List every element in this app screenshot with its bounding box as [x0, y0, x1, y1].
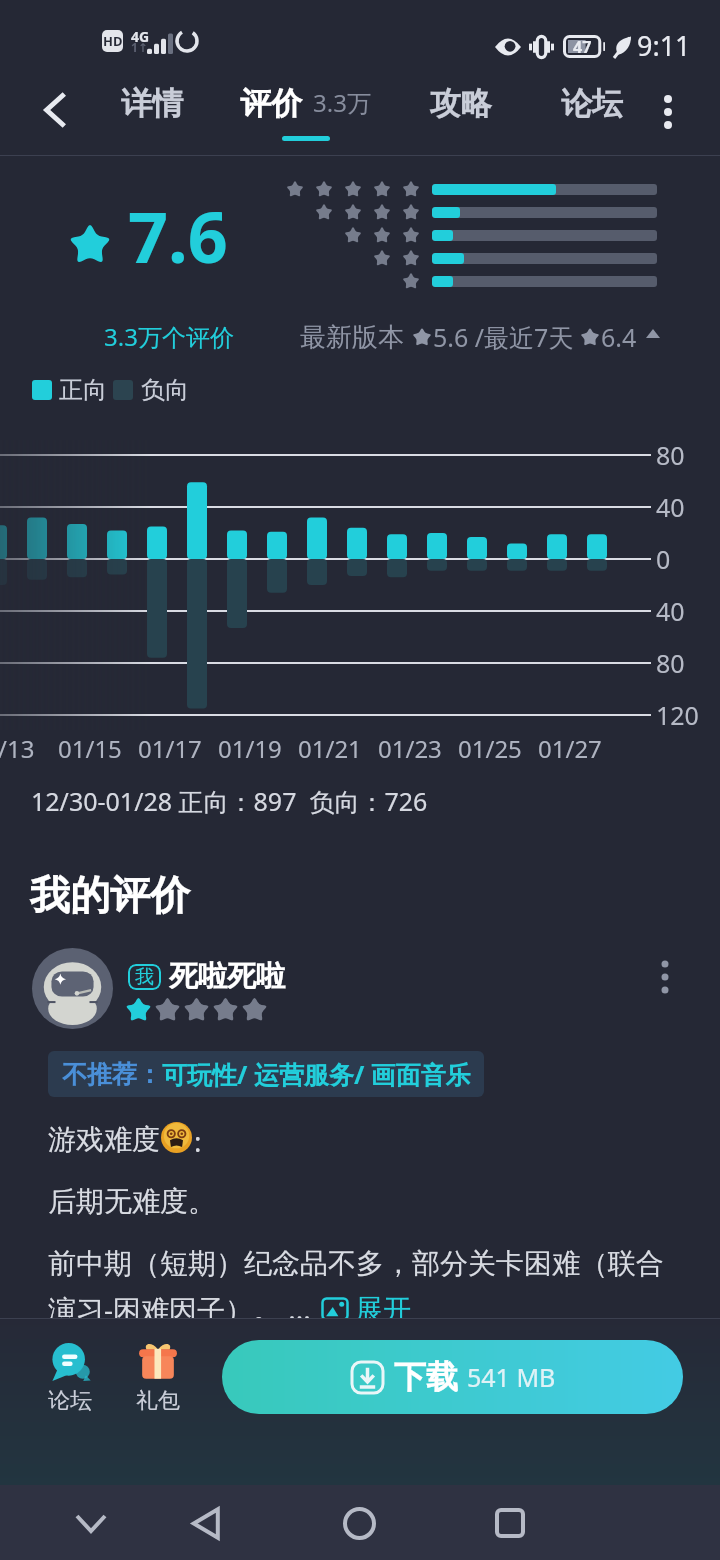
staticText: 礼包 [136, 1387, 180, 1415]
staticText: 01/19 [218, 732, 282, 765]
staticText: 论坛 [561, 84, 623, 123]
button[interactable]: 下载 [222, 1340, 683, 1414]
button[interactable]: 攻略 [430, 84, 492, 123]
button[interactable]: 论坛 [561, 84, 623, 123]
staticText: 5.6 /最近7天 [433, 320, 574, 354]
staticText: : [194, 1122, 202, 1160]
staticText: 01/21 [298, 732, 362, 765]
staticText: 可玩性/ 运营服务/ 画面音乐 [162, 1057, 471, 1091]
staticText: 4G [131, 27, 150, 46]
button[interactable]: Recents [478, 1491, 542, 1555]
staticText: 80 [656, 438, 685, 472]
staticText: 我 [135, 965, 154, 989]
staticText: 游戏难度 [48, 1122, 160, 1157]
staticText: 详情 [121, 84, 183, 123]
button[interactable]: Back [175, 1491, 239, 1555]
staticText: HD [103, 32, 123, 50]
staticText: 最新版本 [300, 321, 404, 354]
staticText: 01/17 [138, 732, 202, 765]
button[interactable]: 礼包 [123, 1340, 193, 1415]
button[interactable]: More options [640, 82, 696, 138]
staticText: 9:11 [637, 27, 691, 64]
staticText: 论坛 [48, 1387, 92, 1415]
staticText: 80 [656, 646, 685, 680]
staticText: 6.4 [601, 320, 637, 354]
staticText: 01/27 [538, 732, 602, 765]
staticText: 541 MB [467, 1360, 556, 1394]
staticText: 前中期（短期）纪念品不多，部分关卡困难（联合 [48, 1246, 664, 1281]
button[interactable]: 论坛 [35, 1340, 105, 1415]
staticText: 40 [656, 594, 685, 628]
staticText: 40 [656, 490, 685, 524]
staticText: 3.3万 [313, 86, 371, 119]
staticText: 3.3万个评价 [104, 320, 234, 353]
staticText: 0 [656, 542, 671, 576]
staticText: 评价 [240, 84, 302, 123]
staticText: 1↑ [131, 39, 148, 55]
button[interactable]: Hide keyboard [59, 1491, 123, 1555]
button[interactable]: Review options [640, 950, 690, 1000]
button[interactable]: 评价 [240, 84, 371, 141]
staticText: 下载 [394, 1357, 458, 1397]
staticText: 死啦死啦 [169, 958, 285, 995]
staticText: 正向 [59, 375, 107, 405]
staticText: 不推荐： [62, 1059, 162, 1090]
staticText: 攻略 [430, 84, 492, 123]
staticText: 负向 [141, 375, 189, 405]
staticText: 120 [656, 698, 699, 732]
staticText: 我的评价 [30, 870, 190, 920]
button[interactable]: 不推荐： [48, 1051, 484, 1097]
staticText: 后期无难度。 [48, 1184, 216, 1219]
staticText: 展开 [355, 1292, 411, 1327]
staticText: 7.6 [128, 188, 228, 283]
staticText: /13 [0, 732, 35, 765]
staticText: 01/25 [458, 732, 522, 765]
button[interactable]: 详情 [121, 84, 183, 123]
staticText: 01/15 [58, 732, 122, 765]
button[interactable]: Home [327, 1491, 391, 1555]
staticText: 演习-困难因子）。 ... [48, 1290, 311, 1328]
staticText: 12/30-01/28 正向：897 负向：726 [31, 784, 428, 818]
staticText: 01/23 [378, 732, 442, 765]
button[interactable]: Back [28, 82, 84, 138]
staticText: 47 [573, 36, 592, 58]
